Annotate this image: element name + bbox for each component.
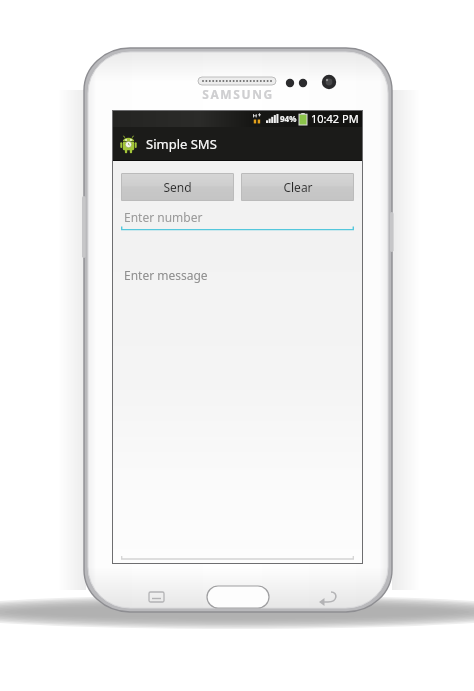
staticText: Enter number <box>124 209 203 225</box>
button[interactable]: Clear <box>241 173 354 201</box>
button[interactable]: Enter message <box>121 231 354 564</box>
staticText: Enter message <box>124 267 208 283</box>
staticText: Send <box>163 179 192 195</box>
staticText: Clear <box>283 179 313 195</box>
staticText: Simple SMS <box>146 135 217 153</box>
button[interactable]: Send <box>121 173 234 201</box>
button[interactable]: Enter number <box>121 205 354 231</box>
staticText: 10:42 PM <box>311 111 359 126</box>
staticText: SAMSUNG <box>202 86 274 102</box>
staticText: 94% <box>280 113 297 124</box>
